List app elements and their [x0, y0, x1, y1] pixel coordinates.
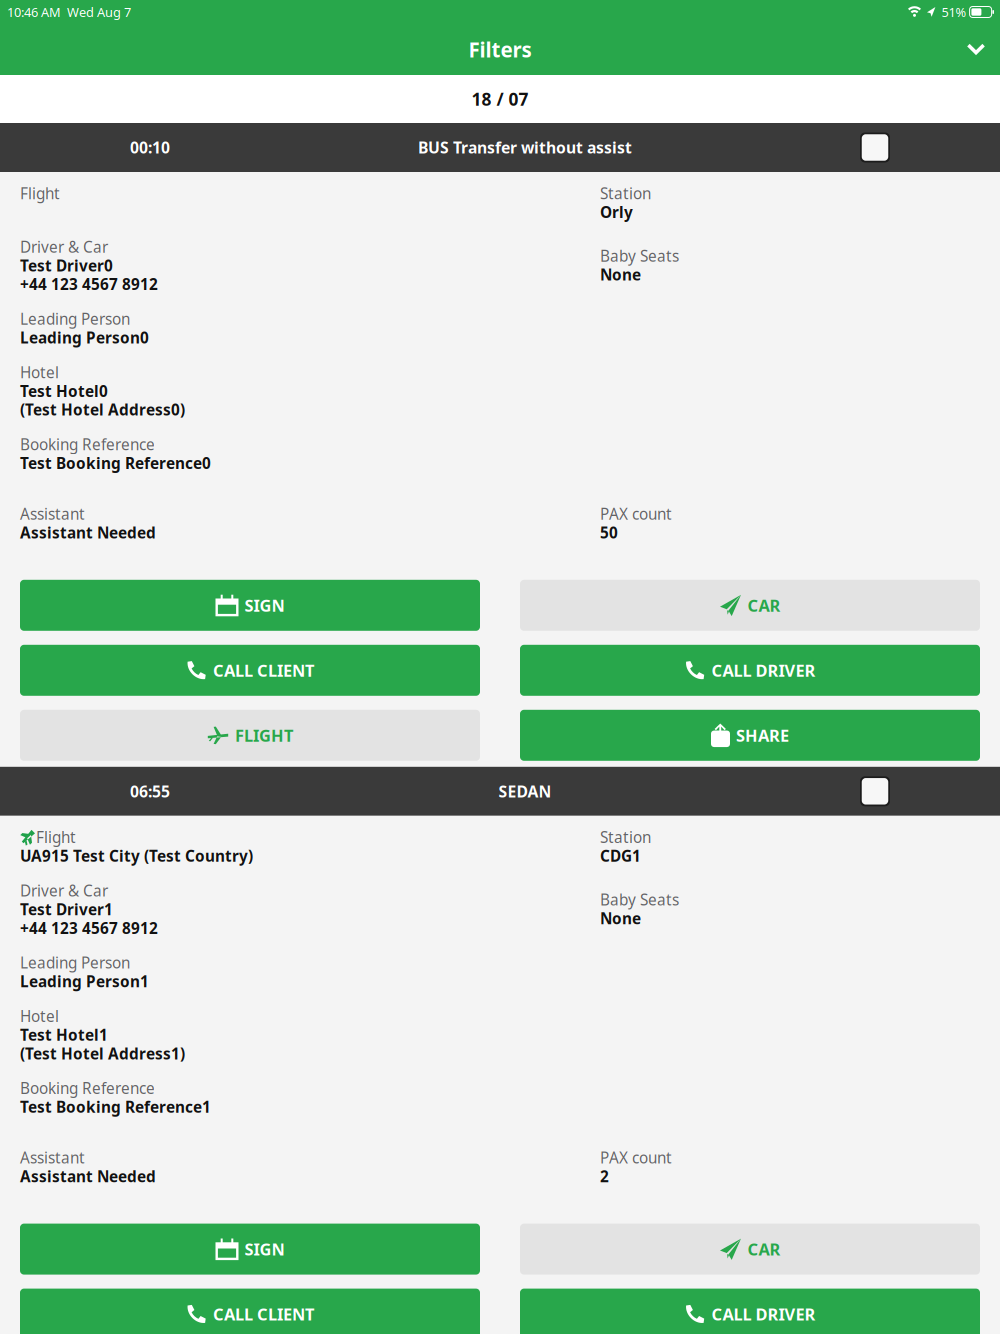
staticText: UA915 Test City (Test Country) [20, 845, 253, 866]
button[interactable]: Collapse filters [952, 24, 1000, 75]
staticText: CALL CLIENT [213, 1303, 314, 1325]
button[interactable]: Select transfer [750, 123, 1000, 172]
staticText: CALL DRIVER [711, 1303, 815, 1325]
staticText: Leading Person [20, 308, 130, 329]
staticText: Flight [36, 827, 76, 848]
button[interactable]: SIGN [20, 580, 480, 631]
staticText: Wed Aug 7 [67, 3, 131, 21]
button[interactable]: CALL CLIENT [20, 1289, 480, 1334]
staticText: SIGN [244, 1238, 284, 1260]
staticText: 50 [600, 522, 618, 543]
button[interactable]: FLIGHT [20, 710, 480, 761]
staticText: Test Hotel1 [20, 1024, 108, 1045]
staticText: 2 [600, 1166, 609, 1187]
staticText: Booking Reference [20, 1078, 155, 1099]
staticText: SHARE [736, 724, 789, 746]
button[interactable]: SIGN [20, 1224, 480, 1275]
staticText: CDG1 [600, 845, 641, 866]
staticText: None [600, 908, 641, 929]
staticText: 18 / 07 [471, 87, 528, 111]
staticText: Hotel [20, 1006, 59, 1026]
staticText: Test Hotel0 [20, 380, 108, 401]
staticText: Assistant Needed [20, 522, 156, 543]
staticText: CALL CLIENT [213, 659, 314, 681]
staticText: Flight [20, 183, 60, 204]
staticText: Test Booking Reference1 [20, 1096, 211, 1117]
staticText: 00:10 [130, 137, 170, 158]
staticText: (Test Hotel Address0) [20, 399, 185, 420]
staticText: (Test Hotel Address1) [20, 1043, 185, 1064]
staticText: Leading Person0 [20, 327, 149, 348]
staticText: 10:46 AM [7, 3, 61, 21]
staticText: Driver & Car [20, 880, 108, 901]
staticText: +44 123 4567 8912 [20, 274, 158, 295]
staticText: 51% [942, 3, 967, 21]
staticText: Filters [468, 35, 531, 63]
staticText: Assistant Needed [20, 1166, 156, 1187]
button[interactable]: CALL DRIVER [520, 645, 980, 696]
staticText: Assistant [20, 1147, 85, 1168]
staticText: BUS Transfer without assist [418, 137, 632, 158]
staticText: FLIGHT [235, 724, 293, 746]
staticText: +44 123 4567 8912 [20, 917, 158, 938]
button[interactable]: Select transfer [750, 767, 1000, 816]
staticText: Driver & Car [20, 236, 108, 257]
staticText: None [600, 264, 641, 285]
button[interactable]: SHARE [520, 710, 980, 761]
button[interactable]: CAR [520, 1224, 980, 1275]
staticText: Booking Reference [20, 434, 155, 455]
staticText: Assistant [20, 503, 85, 524]
button[interactable]: CALL DRIVER [520, 1289, 980, 1334]
staticText: CALL DRIVER [711, 659, 815, 681]
button[interactable]: CALL CLIENT [20, 645, 480, 696]
staticText: Test Driver0 [20, 255, 113, 276]
staticText: PAX count [600, 503, 672, 524]
staticText: 06:55 [130, 781, 170, 802]
staticText: Leading Person1 [20, 971, 149, 992]
staticText: SEDAN [498, 781, 551, 802]
staticText: Baby Seats [600, 245, 679, 266]
staticText [967, 3, 970, 21]
button[interactable]: CAR [520, 580, 980, 631]
staticText: CAR [747, 1238, 780, 1260]
staticText: Station [600, 183, 651, 204]
staticText: Test Booking Reference0 [20, 453, 211, 473]
staticText: CAR [747, 594, 780, 616]
staticText: Station [600, 827, 651, 848]
staticText: Baby Seats [600, 889, 679, 910]
staticText: Leading Person [20, 952, 130, 973]
staticText: PAX count [600, 1147, 672, 1168]
staticText: SIGN [244, 594, 284, 616]
staticText: Test Driver1 [20, 899, 113, 920]
staticText: Hotel [20, 362, 59, 383]
staticText: Orly [600, 202, 633, 222]
